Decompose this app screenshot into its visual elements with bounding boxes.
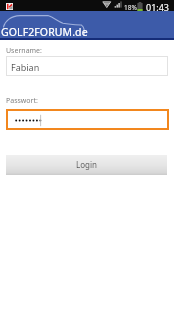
button[interactable] xyxy=(6,109,169,130)
staticText: Passwort: xyxy=(6,96,38,106)
staticText: Login xyxy=(76,159,97,170)
button[interactable]: Fabian xyxy=(6,56,168,76)
other: Antivirus notification xyxy=(6,3,13,10)
staticText: Username: xyxy=(6,46,42,56)
staticText: 01:43 xyxy=(146,1,170,12)
staticText: Fabian xyxy=(11,61,40,73)
staticText: 18% xyxy=(124,3,137,12)
button[interactable]: Login xyxy=(6,155,167,175)
staticText: GOLF2FORUM.de xyxy=(1,25,88,39)
